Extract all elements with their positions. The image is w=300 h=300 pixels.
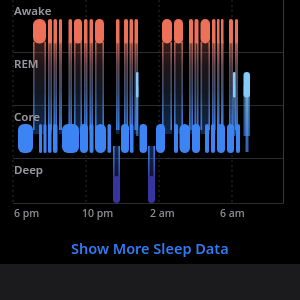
staticText: Core <box>14 109 40 125</box>
staticText: REM <box>14 56 39 72</box>
staticText: 10 pm <box>82 206 114 220</box>
staticText: 2 am <box>150 206 175 220</box>
staticText: Show More Sleep Data <box>71 238 229 258</box>
staticText: 6 pm <box>14 206 40 220</box>
button[interactable]: Show More Sleep Data <box>65 236 235 260</box>
staticText: 6 am <box>220 206 245 220</box>
staticText: Deep <box>14 162 44 178</box>
staticText: Awake <box>14 3 52 19</box>
